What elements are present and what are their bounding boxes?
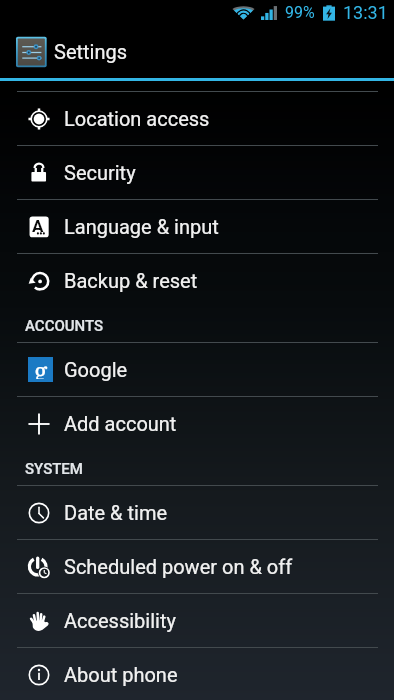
button[interactable]: Backup & reset: [0, 254, 394, 307]
staticText: 13:31: [343, 2, 388, 23]
staticText: ACCOUNTS: [25, 317, 104, 335]
staticText: Security: [64, 161, 136, 184]
staticText: Scheduled power on & off: [64, 555, 293, 578]
staticText: Settings: [54, 40, 128, 63]
staticText: Google: [64, 358, 128, 381]
staticText: 99%: [285, 3, 315, 22]
button[interactable]: Location access: [0, 92, 394, 145]
button[interactable]: Add account: [0, 397, 394, 450]
staticText: Location access: [64, 107, 210, 130]
staticText: About phone: [64, 663, 178, 686]
staticText: g: [34, 354, 48, 379]
button[interactable]: Date & time: [0, 486, 394, 539]
button[interactable]: About phone: [0, 648, 394, 700]
staticText: SYSTEM: [25, 460, 83, 478]
staticText: Backup & reset: [64, 269, 198, 292]
button[interactable]: A: [0, 200, 394, 253]
button[interactable]: g: [0, 343, 394, 396]
button[interactable]: Security: [0, 146, 394, 199]
button[interactable]: Scheduled power on & off: [0, 540, 394, 593]
button[interactable]: Accessibility: [0, 594, 394, 647]
staticText: A: [32, 216, 44, 236]
staticText: Language & input: [64, 215, 219, 238]
staticText: Date & time: [64, 501, 168, 524]
staticText: PERSONAL: [25, 66, 101, 84]
staticText: Add account: [64, 412, 177, 435]
staticText: Accessibility: [64, 609, 176, 632]
